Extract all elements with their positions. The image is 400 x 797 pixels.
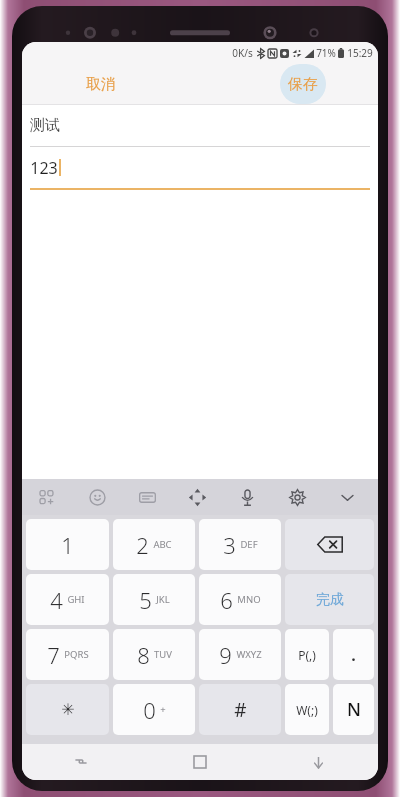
staticText: MNO (237, 593, 261, 606)
button[interactable]: 保存 (280, 64, 326, 104)
staticText: WXYZ (236, 648, 262, 661)
other: Backspace (317, 536, 343, 553)
button[interactable]: Hide keyboard (259, 744, 378, 780)
button[interactable]: # (199, 684, 281, 735)
staticText: PQRS (64, 648, 89, 661)
staticText: W(;) (296, 702, 318, 718)
button[interactable]: Recents (22, 744, 140, 780)
button[interactable]: More (322, 479, 372, 515)
staticText: 4 (50, 585, 63, 615)
button[interactable]: N (333, 684, 374, 735)
staticText: 测试 (30, 116, 60, 135)
button[interactable]: 3 (199, 519, 281, 570)
staticText: TUV (154, 648, 172, 661)
button[interactable]: P(,) (285, 629, 329, 680)
button[interactable]: Home (140, 744, 259, 780)
staticText: GHI (67, 593, 85, 606)
button[interactable]: Emoji (72, 479, 122, 515)
staticText: 15:29 (347, 46, 373, 60)
button[interactable]: Backspace (285, 519, 374, 570)
button[interactable]: 2 (113, 519, 195, 570)
staticText: 5 (139, 585, 152, 615)
button[interactable]: 4 (26, 574, 109, 625)
staticText: P(,) (298, 647, 316, 663)
button[interactable]: ✳ (26, 684, 109, 735)
button[interactable]: . (333, 629, 374, 680)
button[interactable]: 取消 (74, 69, 128, 100)
staticText: 保存 (288, 75, 318, 94)
staticText: # (234, 697, 247, 723)
staticText: JKL (156, 593, 170, 606)
staticText: 1 (61, 530, 74, 560)
button[interactable]: Text shortcuts (122, 479, 172, 515)
staticText: 完成 (316, 591, 344, 609)
staticText: ✳ (61, 700, 75, 719)
button[interactable]: Keyboard settings (272, 479, 322, 515)
button[interactable]: Stickers (22, 479, 72, 515)
staticText: 7 (47, 640, 60, 670)
staticText: N (347, 697, 361, 722)
staticText: 2 (136, 530, 149, 560)
staticText: 0 (143, 695, 156, 725)
button[interactable]: 123 (22, 147, 378, 190)
staticText: 6 (220, 585, 233, 615)
button[interactable]: Voice input (222, 479, 272, 515)
staticText: 0K/s (232, 46, 253, 60)
staticText: 123 (30, 157, 58, 179)
staticText: . (351, 644, 356, 666)
button[interactable]: 1 (26, 519, 109, 570)
button[interactable]: 0 (113, 684, 195, 735)
staticText: + (160, 703, 166, 716)
button[interactable]: 测试 (22, 105, 378, 147)
staticText: 71% (316, 46, 336, 60)
staticText: 3 (223, 530, 236, 560)
button[interactable]: 8 (113, 629, 195, 680)
button[interactable]: 完成 (285, 574, 374, 625)
button[interactable]: W(;) (285, 684, 329, 735)
button[interactable]: 9 (199, 629, 281, 680)
staticText: 取消 (86, 75, 116, 94)
staticText: ABC (153, 538, 172, 551)
button[interactable]: 7 (26, 629, 109, 680)
staticText: 8 (137, 640, 150, 670)
staticText: DEF (240, 538, 258, 551)
button[interactable]: 6 (199, 574, 281, 625)
button[interactable]: 5 (113, 574, 195, 625)
button[interactable]: Move cursor (172, 479, 222, 515)
staticText: 9 (219, 640, 232, 670)
